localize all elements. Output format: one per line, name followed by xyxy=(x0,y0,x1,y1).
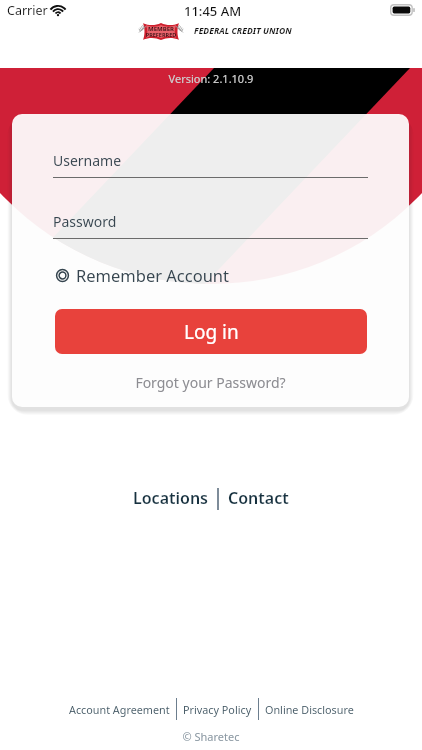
staticText: Username xyxy=(53,151,122,170)
button[interactable]: Account Agreement xyxy=(69,702,170,717)
button[interactable]: Log in xyxy=(55,309,367,354)
staticText: 11:45 AM xyxy=(184,2,242,20)
button[interactable]: Contact xyxy=(228,487,289,509)
staticText: Carrier xyxy=(7,2,48,19)
staticText: Remember Account xyxy=(76,264,230,286)
staticText: MEMBER xyxy=(145,25,177,33)
button[interactable]: Privacy Policy xyxy=(183,702,252,717)
button[interactable]: Remember Account xyxy=(53,264,230,286)
staticText: FEDERAL CREDIT UNION xyxy=(194,25,292,37)
button[interactable]: Locations xyxy=(133,487,208,509)
staticText: Password xyxy=(53,212,117,231)
button[interactable]: Forgot your Password? xyxy=(12,373,409,392)
staticText: Version: 2.1.10.9 xyxy=(0,71,422,86)
staticText: PREFERRED xyxy=(144,31,178,38)
button[interactable]: Online Disclosure xyxy=(265,702,354,717)
staticText: © Sharetec xyxy=(0,729,422,744)
staticText: Log in xyxy=(184,319,239,345)
